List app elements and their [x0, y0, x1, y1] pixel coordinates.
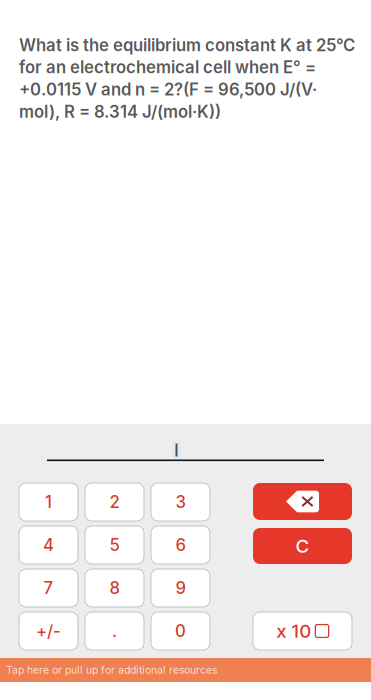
- button[interactable]: 3: [151, 483, 210, 521]
- staticText: 2: [109, 492, 119, 512]
- staticText: 0: [175, 621, 186, 641]
- staticText: 3: [175, 492, 185, 512]
- staticText: 7: [43, 578, 53, 598]
- staticText: What is the equilibrium constant K at 25…: [19, 34, 355, 123]
- button[interactable]: 8: [85, 569, 144, 607]
- button[interactable]: 0: [151, 612, 210, 650]
- staticText: 1: [45, 492, 52, 512]
- staticText: .: [112, 621, 117, 641]
- staticText: C: [295, 535, 309, 557]
- staticText: 9: [175, 578, 185, 598]
- button[interactable]: 1: [19, 483, 78, 521]
- staticText: 6: [175, 535, 185, 555]
- button[interactable]: Tap here or pull up for additional resou…: [0, 658, 371, 682]
- button[interactable]: .: [85, 612, 144, 650]
- button[interactable]: x 10: [253, 612, 352, 650]
- button[interactable]: Backspace: [253, 483, 352, 520]
- staticText: 4: [43, 535, 54, 555]
- staticText: 8: [109, 578, 119, 598]
- staticText: 5: [109, 535, 119, 555]
- button[interactable]: +/-: [19, 612, 78, 650]
- button[interactable]: 6: [151, 526, 210, 564]
- staticText: x 10: [276, 620, 311, 642]
- button[interactable]: 9: [151, 569, 210, 607]
- button[interactable]: C: [253, 528, 352, 564]
- button[interactable]: 7: [19, 569, 78, 607]
- button[interactable]: 5: [85, 526, 144, 564]
- staticText: Tap here or pull up for additional resou…: [6, 664, 217, 676]
- button[interactable]: 4: [19, 526, 78, 564]
- button[interactable]: 2: [85, 483, 144, 521]
- staticText: +/-: [36, 621, 61, 641]
